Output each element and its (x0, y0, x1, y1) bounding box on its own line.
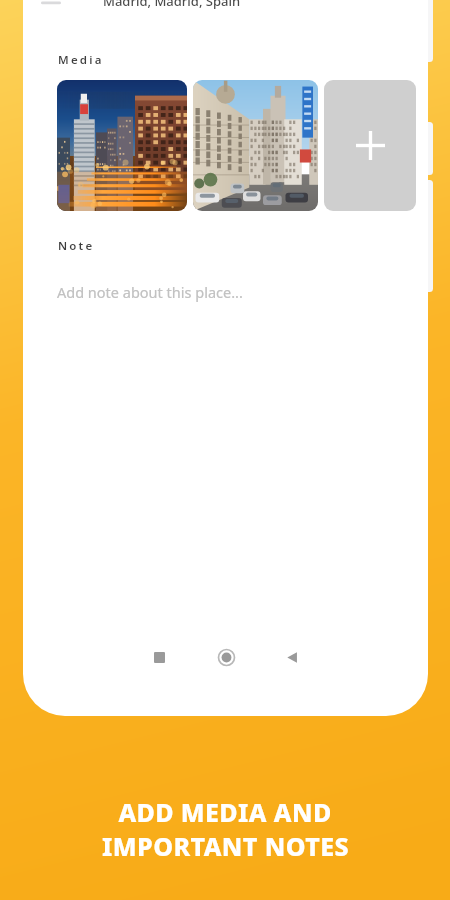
staticText: ADD MEDIA AND (118, 795, 332, 829)
staticText: Note (58, 238, 95, 254)
button[interactable]: Menu (37, 0, 77, 10)
button[interactable]: Photo of Gran Via by day (193, 80, 318, 211)
staticText: Madrid, Madrid, Spain (103, 0, 241, 10)
button[interactable]: Recent apps (136, 634, 182, 680)
staticText: Media (58, 52, 104, 68)
staticText: IMPORTANT NOTES (102, 829, 349, 863)
staticText: Add note about this place... (57, 282, 243, 302)
button[interactable]: Photo of Gran Via at night (57, 80, 187, 211)
button[interactable]: Add media (324, 80, 416, 211)
button[interactable]: Add note about this place... (57, 272, 397, 312)
button[interactable]: Back (269, 634, 315, 680)
button[interactable]: Home (203, 634, 249, 680)
